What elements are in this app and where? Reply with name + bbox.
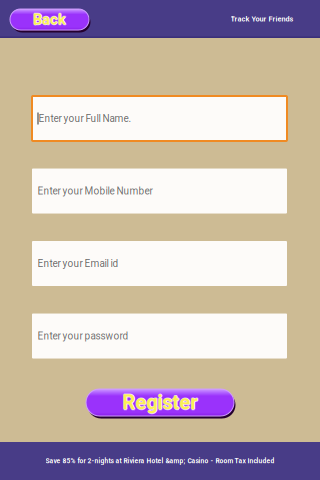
button[interactable]: Enter your Full Name.	[32, 96, 287, 141]
staticText: Enter your Mobile Number	[37, 185, 152, 197]
button[interactable]: Enter your password	[32, 313, 287, 358]
button[interactable]: Enter your Email id	[32, 241, 287, 286]
staticText: Back	[32, 11, 65, 28]
button[interactable]: Register	[84, 387, 235, 418]
staticText: Save 85% for 2-nights at Riviera Hotel &…	[45, 457, 274, 465]
button[interactable]: Track Your Friends	[227, 10, 297, 28]
staticText: Enter your password	[37, 330, 128, 342]
staticText: Register	[122, 391, 197, 414]
button[interactable]: Enter your Mobile Number	[32, 168, 287, 213]
button[interactable]: Back	[8, 7, 90, 32]
staticText: Enter your Email id	[37, 258, 118, 269]
staticText: Register	[122, 392, 197, 415]
staticText: Register	[123, 391, 198, 414]
staticText: Track Your Friends	[230, 15, 293, 23]
button[interactable]: Save 85% for 2-nights at Riviera Hotel &…	[0, 442, 320, 480]
staticText: Back	[33, 12, 66, 29]
staticText: Back	[34, 11, 67, 28]
staticText: Back	[33, 11, 66, 28]
staticText: Enter your Full Name.	[38, 113, 131, 124]
staticText: Back	[33, 10, 66, 27]
staticText: Register	[122, 390, 197, 413]
staticText: Register	[122, 391, 197, 414]
